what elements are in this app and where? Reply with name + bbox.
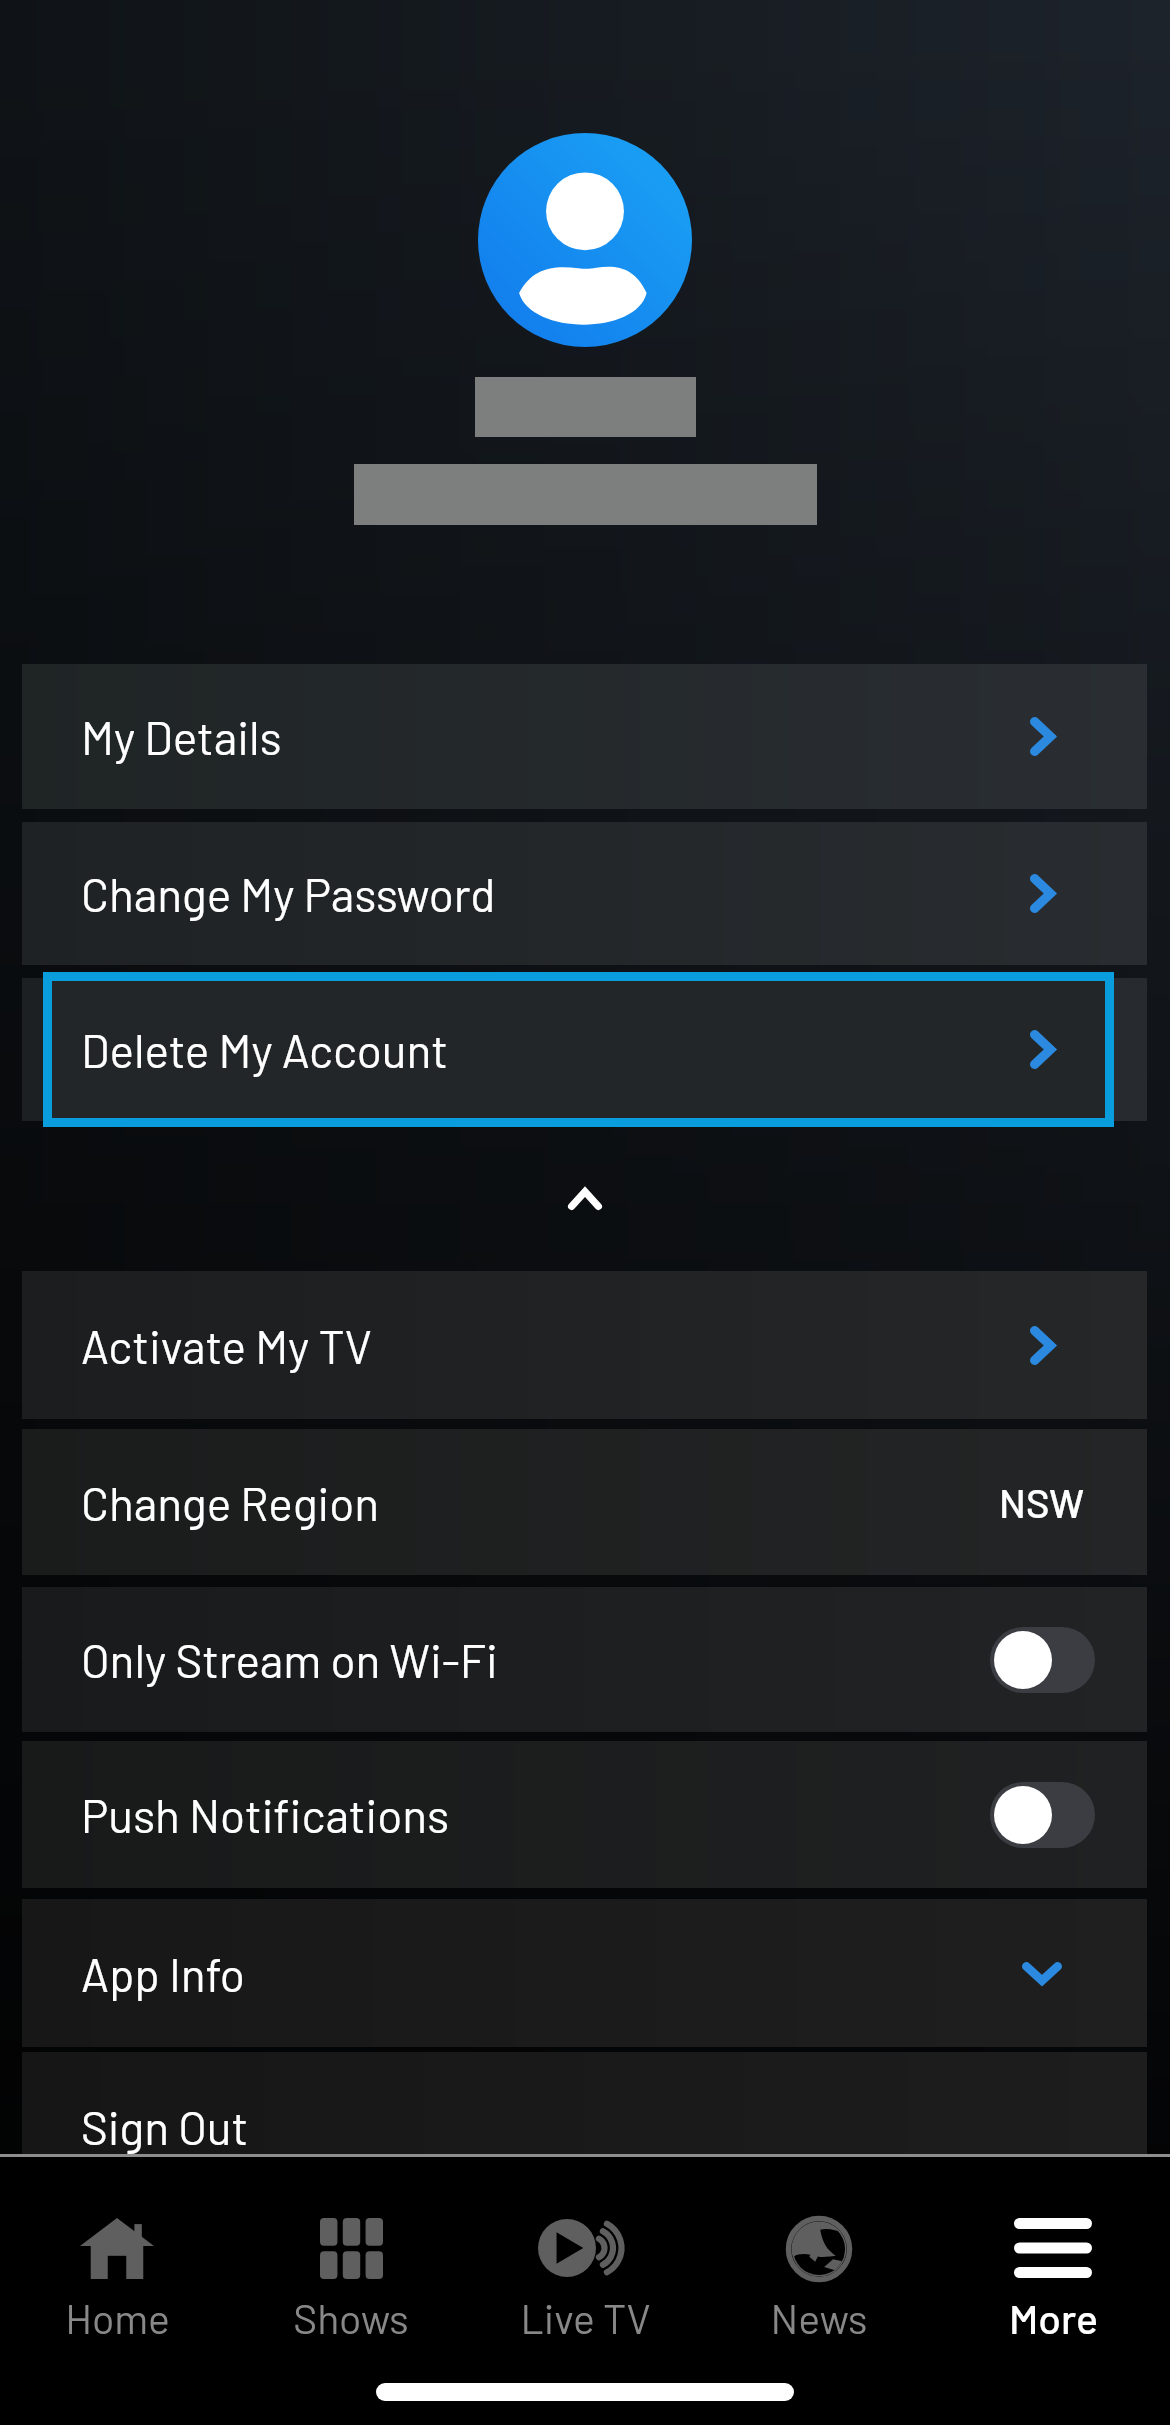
button[interactable]: Live TV (468, 2157, 702, 2342)
button[interactable]: Sign Out (22, 2052, 1147, 2200)
button[interactable]: More (936, 2157, 1170, 2342)
staticText: My Details (81, 709, 282, 764)
staticText: Only Stream on Wi-Fi (81, 1632, 498, 1687)
button[interactable]: News (702, 2157, 936, 2342)
button[interactable]: Push Notifications (22, 1741, 1147, 1888)
staticText: Sign Out (81, 2099, 249, 2154)
staticText: Push Notifications (81, 1787, 450, 1842)
staticText: Change Region (81, 1475, 380, 1530)
staticText: Change My Password (81, 866, 496, 921)
staticText: Shows (293, 2293, 409, 2342)
button[interactable]: Delete My Account (52, 981, 1105, 1118)
button[interactable]: My Details (22, 664, 1147, 809)
button[interactable]: Change My Password (22, 822, 1147, 965)
button[interactable]: Collapse account section (537, 1151, 633, 1247)
button[interactable]: Toggle setting (990, 1782, 1095, 1848)
staticText: Live TV (520, 2293, 651, 2342)
button[interactable]: Change Region (22, 1429, 1147, 1575)
staticText: App Info (81, 1946, 245, 2001)
staticText: NSW (999, 1478, 1085, 1526)
staticText: More (1009, 2293, 1098, 2342)
button[interactable]: Activate My TV (22, 1271, 1147, 1419)
button[interactable]: Only Stream on Wi-Fi (22, 1587, 1147, 1732)
staticText: Delete My Account (81, 1022, 448, 1077)
staticText: Home (65, 2293, 170, 2342)
button[interactable]: Shows (234, 2157, 468, 2342)
staticText: Activate My TV (81, 1318, 372, 1373)
button[interactable]: App Info (22, 1899, 1147, 2047)
button[interactable]: Toggle setting (990, 1627, 1095, 1693)
staticText: News (770, 2293, 868, 2342)
button[interactable]: Home (0, 2157, 234, 2342)
